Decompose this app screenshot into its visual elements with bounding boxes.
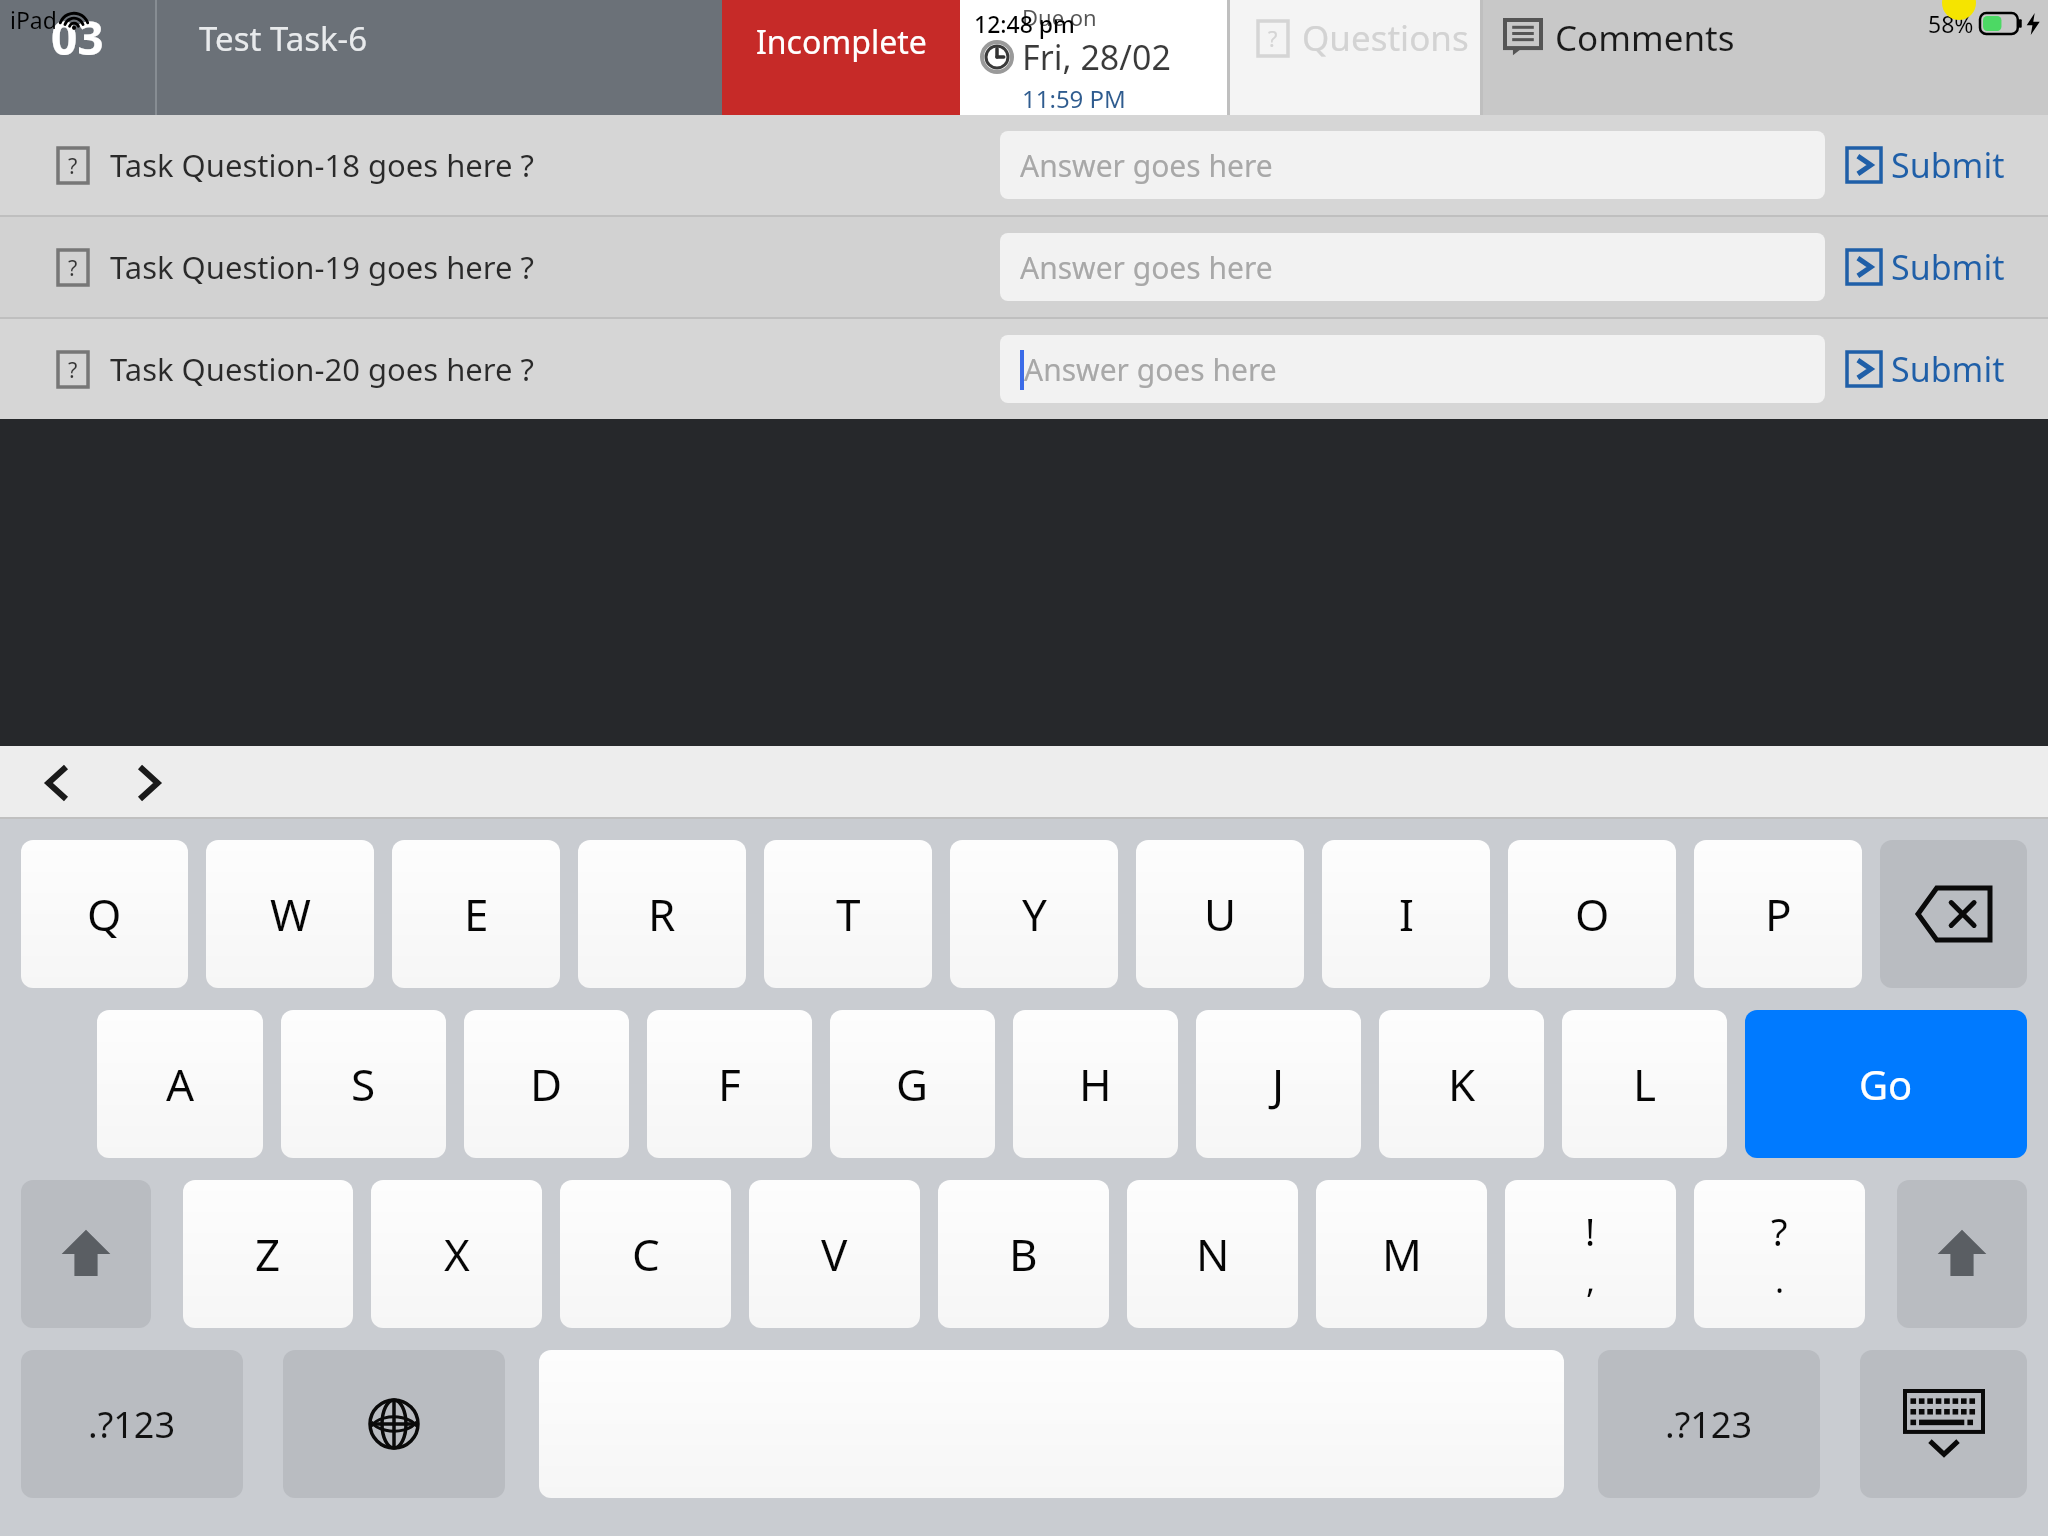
staticText: .?123	[1665, 1400, 1753, 1449]
staticText: Task Question-19 goes here ?	[110, 246, 534, 288]
staticText: !	[1585, 1205, 1596, 1257]
button[interactable]: S	[281, 1010, 446, 1158]
staticText: J	[1272, 1054, 1285, 1114]
button[interactable]: ?	[0, 217, 1000, 317]
button[interactable]: Shift	[21, 1180, 151, 1328]
button[interactable]: Comments	[1483, 0, 2048, 115]
staticText: H	[1079, 1054, 1112, 1114]
button[interactable]: G	[830, 1010, 995, 1158]
staticText: Answer goes here	[1020, 247, 1273, 288]
staticText: 11:59 PM	[1022, 82, 1126, 115]
button[interactable]: Test Task-6	[157, 0, 722, 115]
button[interactable]: ?	[0, 319, 1000, 419]
staticText: Q	[87, 884, 122, 944]
button[interactable]: ?	[1694, 1180, 1865, 1328]
button[interactable]: P	[1694, 840, 1862, 988]
staticText: Test Task-6	[199, 16, 368, 61]
staticText: 12:48 pm	[974, 8, 1075, 39]
button[interactable]: .?123	[21, 1350, 243, 1498]
staticText: Incomplete	[756, 20, 927, 64]
button[interactable]: O	[1508, 840, 1676, 988]
staticText: ?	[68, 253, 78, 282]
button[interactable]: Answer goes here	[1000, 335, 1825, 403]
staticText: Task Question-18 goes here ?	[110, 144, 534, 186]
button[interactable]: Go	[1745, 1010, 2027, 1158]
button[interactable]: Z	[183, 1180, 353, 1328]
button[interactable]: A	[97, 1010, 263, 1158]
staticText: U	[1204, 884, 1237, 944]
button[interactable]: ?	[1230, 0, 1480, 115]
staticText: Comments	[1555, 14, 1735, 62]
button[interactable]: Y	[950, 840, 1118, 988]
staticText: ?	[68, 355, 78, 384]
button[interactable]: W	[206, 840, 374, 988]
staticText: .	[1775, 1257, 1785, 1303]
button[interactable]: H	[1013, 1010, 1178, 1158]
button[interactable]: Due on	[960, 0, 1227, 115]
staticText: Submit	[1891, 346, 2005, 392]
button[interactable]: X	[371, 1180, 542, 1328]
button[interactable]: N	[1127, 1180, 1298, 1328]
staticText: Fri, 28/02	[1022, 34, 1171, 80]
staticText: 58%	[1928, 8, 1974, 39]
staticText: C	[632, 1224, 660, 1284]
staticText: O	[1575, 884, 1610, 944]
button[interactable]: Next field	[120, 755, 176, 811]
button[interactable]: U	[1136, 840, 1304, 988]
staticText: ?	[1771, 1205, 1788, 1257]
staticText: W	[270, 884, 311, 944]
button[interactable]: E	[392, 840, 560, 988]
staticText: M	[1382, 1224, 1422, 1284]
button[interactable]: Shift	[1897, 1180, 2027, 1328]
staticText: ,	[1586, 1257, 1596, 1303]
staticText: Due on	[1022, 2, 1097, 32]
staticText: A	[166, 1054, 195, 1114]
button[interactable]: Submit	[1825, 115, 2048, 215]
button[interactable]: Answer goes here	[1000, 233, 1825, 301]
button[interactable]: Previous field	[30, 755, 86, 811]
button[interactable]: Hide keyboard	[1860, 1350, 2027, 1498]
button[interactable]: V	[749, 1180, 920, 1328]
button[interactable]: F	[647, 1010, 812, 1158]
staticText: B	[1009, 1224, 1038, 1284]
button[interactable]: Q	[21, 840, 188, 988]
button[interactable]: T	[764, 840, 932, 988]
button[interactable]: M	[1316, 1180, 1487, 1328]
button[interactable]: ?	[0, 115, 1000, 215]
button[interactable]: !	[1505, 1180, 1676, 1328]
button[interactable]: Submit	[1825, 217, 2048, 317]
button[interactable]: Backspace	[1880, 840, 2027, 988]
button[interactable]: .?123	[1598, 1350, 1820, 1498]
button[interactable]: Answer goes here	[1000, 131, 1825, 199]
button[interactable]: R	[578, 840, 746, 988]
button[interactable]: Submit	[1825, 319, 2048, 419]
button[interactable]: I	[1322, 840, 1490, 988]
button[interactable]: 03	[0, 0, 155, 115]
button[interactable]: Incomplete	[722, 0, 960, 115]
button[interactable]: L	[1562, 1010, 1727, 1158]
button[interactable]: B	[938, 1180, 1109, 1328]
staticText: T	[836, 884, 861, 944]
staticText: N	[1196, 1224, 1230, 1284]
staticText: Go	[1859, 1057, 1913, 1111]
button[interactable]: K	[1379, 1010, 1544, 1158]
staticText: L	[1633, 1054, 1657, 1114]
staticText: D	[530, 1054, 563, 1114]
staticText: S	[351, 1054, 376, 1114]
staticText: E	[464, 884, 489, 944]
staticText: X	[444, 1224, 470, 1284]
staticText: Z	[255, 1224, 281, 1284]
staticText: Task Question-20 goes here ?	[110, 348, 534, 390]
button[interactable]: Change keyboard	[283, 1350, 505, 1498]
staticText: Submit	[1891, 244, 2005, 290]
button[interactable]: J	[1196, 1010, 1361, 1158]
staticText: F	[718, 1054, 741, 1114]
staticText: I	[1399, 884, 1414, 944]
staticText: R	[648, 884, 676, 944]
staticText: iPad	[10, 4, 57, 35]
button[interactable]: C	[560, 1180, 731, 1328]
button[interactable]: D	[464, 1010, 629, 1158]
staticText: Answer goes here	[1024, 349, 1277, 390]
staticText: Submit	[1891, 142, 2005, 188]
